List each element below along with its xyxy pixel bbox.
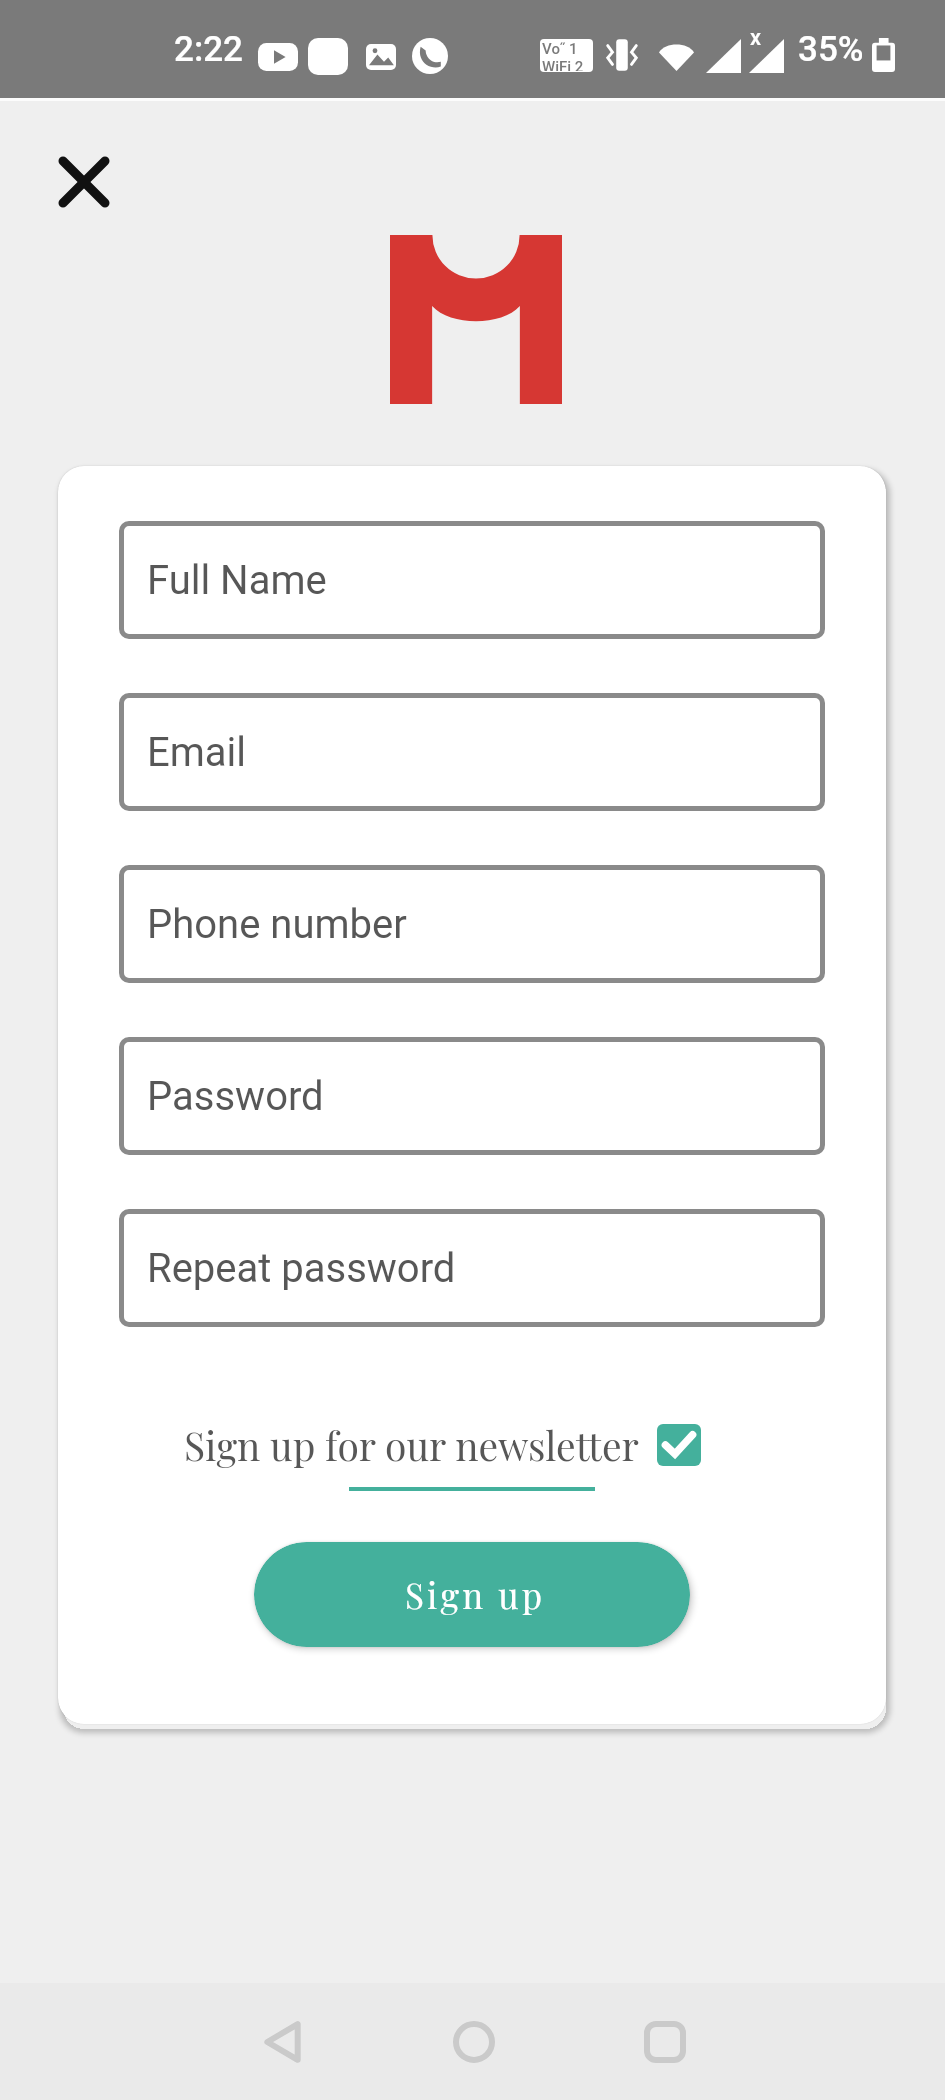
button[interactable]: Email (119, 693, 825, 811)
button[interactable]: Phone number (119, 865, 825, 983)
staticText: WiFi 2 (542, 58, 584, 71)
staticText: Repeat password (147, 1245, 456, 1292)
button[interactable]: Full Name (119, 521, 825, 639)
button[interactable]: Home (419, 1987, 529, 2097)
staticText: Password (147, 1073, 324, 1120)
staticText: x (750, 25, 762, 51)
staticText: Full Name (147, 557, 327, 604)
staticText: Email (147, 729, 247, 776)
button[interactable]: Sign up (254, 1542, 690, 1647)
staticText: Sign up (405, 1571, 546, 1618)
staticText: 2:22 (174, 29, 243, 70)
button[interactable]: Repeat password (119, 1209, 825, 1327)
staticText: 35% (798, 29, 864, 70)
button[interactable]: Password (119, 1037, 825, 1155)
staticText: Voʺ 1 (542, 40, 578, 58)
button[interactable]: Recent apps (610, 1987, 720, 2097)
button[interactable]: Close (36, 134, 132, 230)
button[interactable]: Sign up for our newsletter (184, 1412, 701, 1478)
staticText: Sign up for our newsletter (184, 1419, 639, 1471)
button[interactable]: Back (227, 1987, 337, 2097)
staticText: Phone number (147, 901, 407, 948)
